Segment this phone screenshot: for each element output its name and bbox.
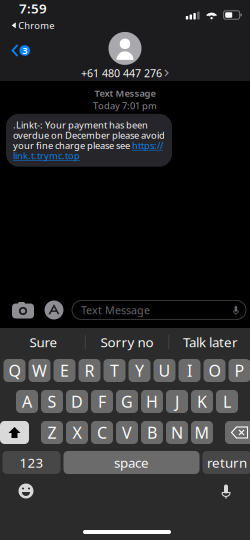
button[interactable]: H (141, 390, 163, 413)
button[interactable]: space (63, 451, 199, 474)
staticText: return (207, 454, 247, 471)
staticText: +61 480 447 276 (81, 66, 162, 80)
button[interactable]: Camera (8, 295, 38, 325)
button[interactable]: Sure (2, 328, 85, 356)
staticText: Today 7:01 pm (93, 99, 157, 112)
staticText: Q (8, 360, 20, 381)
button[interactable]: O (203, 359, 225, 382)
staticText: N (171, 422, 183, 443)
staticText: F (98, 391, 106, 412)
staticText: Chrome (18, 19, 54, 32)
button[interactable]: T (103, 359, 125, 382)
staticText: M (194, 422, 209, 443)
button[interactable]: V (116, 421, 138, 444)
button[interactable]: Z (41, 421, 63, 444)
staticText: Z (47, 422, 56, 443)
button[interactable]: X (66, 421, 88, 444)
staticText: O (208, 360, 220, 381)
button[interactable]: Contact details (81, 32, 169, 80)
staticText: P (234, 360, 244, 381)
staticText: I (187, 360, 192, 381)
button[interactable]: 123 (2, 451, 60, 474)
button[interactable]: Shift (0, 421, 29, 444)
staticText: B (147, 422, 157, 443)
button[interactable]: D (66, 390, 88, 413)
button[interactable]: I (178, 359, 200, 382)
button[interactable]: Delete (225, 421, 250, 444)
staticText: V (122, 422, 132, 443)
button[interactable]: L (216, 390, 238, 413)
staticText: Text Message (81, 303, 150, 317)
staticText: .Linkt-: Your payment has been overdue o… (13, 119, 165, 162)
button[interactable]: N (166, 421, 188, 444)
button[interactable]: B (141, 421, 163, 444)
staticText: Talk later (183, 333, 238, 351)
staticText: H (146, 391, 158, 412)
staticText: E (60, 360, 69, 381)
button[interactable]: Talk later (169, 328, 250, 356)
staticText: Text Message (94, 87, 155, 99)
staticText: L (223, 391, 231, 412)
button[interactable]: P (228, 359, 250, 382)
staticText: 123 (19, 454, 43, 471)
staticText: C (97, 422, 107, 443)
button[interactable]: Text Message field (72, 300, 246, 319)
staticText: 3 (22, 44, 27, 57)
staticText: X (72, 422, 81, 443)
staticText: G (121, 391, 133, 412)
staticText: Y (135, 360, 144, 381)
staticText: space (114, 454, 149, 471)
button[interactable]: S (41, 390, 63, 413)
staticText: T (110, 360, 119, 381)
staticText: U (158, 360, 170, 381)
button[interactable]: Emoji (14, 479, 38, 503)
button[interactable]: G (116, 390, 138, 413)
button[interactable]: Apps (39, 295, 69, 325)
staticText: J (175, 391, 179, 412)
button[interactable]: Q (3, 359, 25, 382)
button[interactable]: Dictation (214, 479, 238, 503)
button[interactable]: Sorry no (86, 328, 168, 356)
button[interactable]: W (28, 359, 50, 382)
staticText: W (32, 360, 47, 381)
staticText: S (47, 391, 56, 412)
button[interactable]: A (16, 390, 38, 413)
button[interactable]: Back to Messages (0, 38, 36, 63)
button[interactable]: J (166, 390, 188, 413)
button[interactable]: K (191, 390, 213, 413)
staticText: A (22, 391, 32, 412)
button[interactable]: R (78, 359, 100, 382)
staticText: D (71, 391, 83, 412)
staticText: K (197, 391, 207, 412)
staticText: R (84, 360, 94, 381)
button[interactable]: C (91, 421, 113, 444)
button[interactable]: M (191, 421, 213, 444)
staticText: Sure (29, 333, 57, 351)
button[interactable]: U (153, 359, 175, 382)
button[interactable]: Y (128, 359, 150, 382)
button[interactable]: F (91, 390, 113, 413)
staticText: 7:59 (19, 0, 47, 17)
button[interactable]: E (53, 359, 75, 382)
staticText: Sorry no (100, 333, 153, 351)
button[interactable]: return (202, 451, 250, 474)
